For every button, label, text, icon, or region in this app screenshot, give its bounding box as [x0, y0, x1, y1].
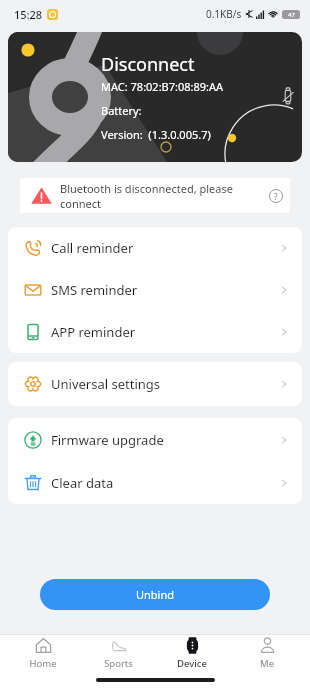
button[interactable]: Universal settings: [8, 362, 302, 406]
button[interactable]: Disconnect: [8, 32, 302, 162]
other: Help: [269, 189, 283, 203]
button[interactable]: Sports: [86, 637, 150, 670]
staticText: 0.1KB/s: [206, 7, 242, 21]
staticText: 15:28: [14, 7, 43, 22]
button[interactable]: APP reminder: [8, 311, 302, 353]
staticText: Bluetooth is disconnected, please connec…: [60, 181, 256, 211]
button[interactable]: Me: [235, 637, 299, 670]
staticText: Disconnect: [101, 52, 195, 77]
button[interactable]: Home: [11, 637, 75, 670]
staticText: MAC: 78:02:B7:08:89:AA: [101, 79, 224, 94]
staticText: Device: [177, 657, 207, 670]
button[interactable]: Firmware upgrade: [8, 418, 302, 461]
staticText: Version: (1.3.0.005.7): [101, 127, 211, 142]
staticText: 47: [288, 11, 295, 19]
staticText: Firmware upgrade: [51, 431, 164, 449]
staticText: Battery:: [101, 103, 142, 118]
button[interactable]: Unbind: [40, 579, 270, 610]
staticText: Me: [260, 657, 274, 670]
button[interactable]: Device: [160, 637, 224, 670]
staticText: Unbind: [136, 587, 175, 602]
staticText: Sports: [104, 657, 133, 670]
button[interactable]: Clear data: [8, 461, 302, 504]
other: Watch disconnected: [281, 86, 295, 105]
staticText: Call reminder: [51, 239, 134, 257]
staticText: APP reminder: [51, 323, 136, 341]
staticText: Home: [29, 657, 57, 670]
staticText: Universal settings: [51, 375, 161, 393]
staticText: ?: [274, 191, 278, 202]
button[interactable]: Call reminder: [8, 227, 302, 269]
staticText: Clear data: [51, 474, 114, 492]
button[interactable]: SMS reminder: [8, 269, 302, 311]
button[interactable]: Bluetooth is disconnected, please connec…: [20, 178, 290, 213]
staticText: SMS reminder: [51, 281, 138, 299]
